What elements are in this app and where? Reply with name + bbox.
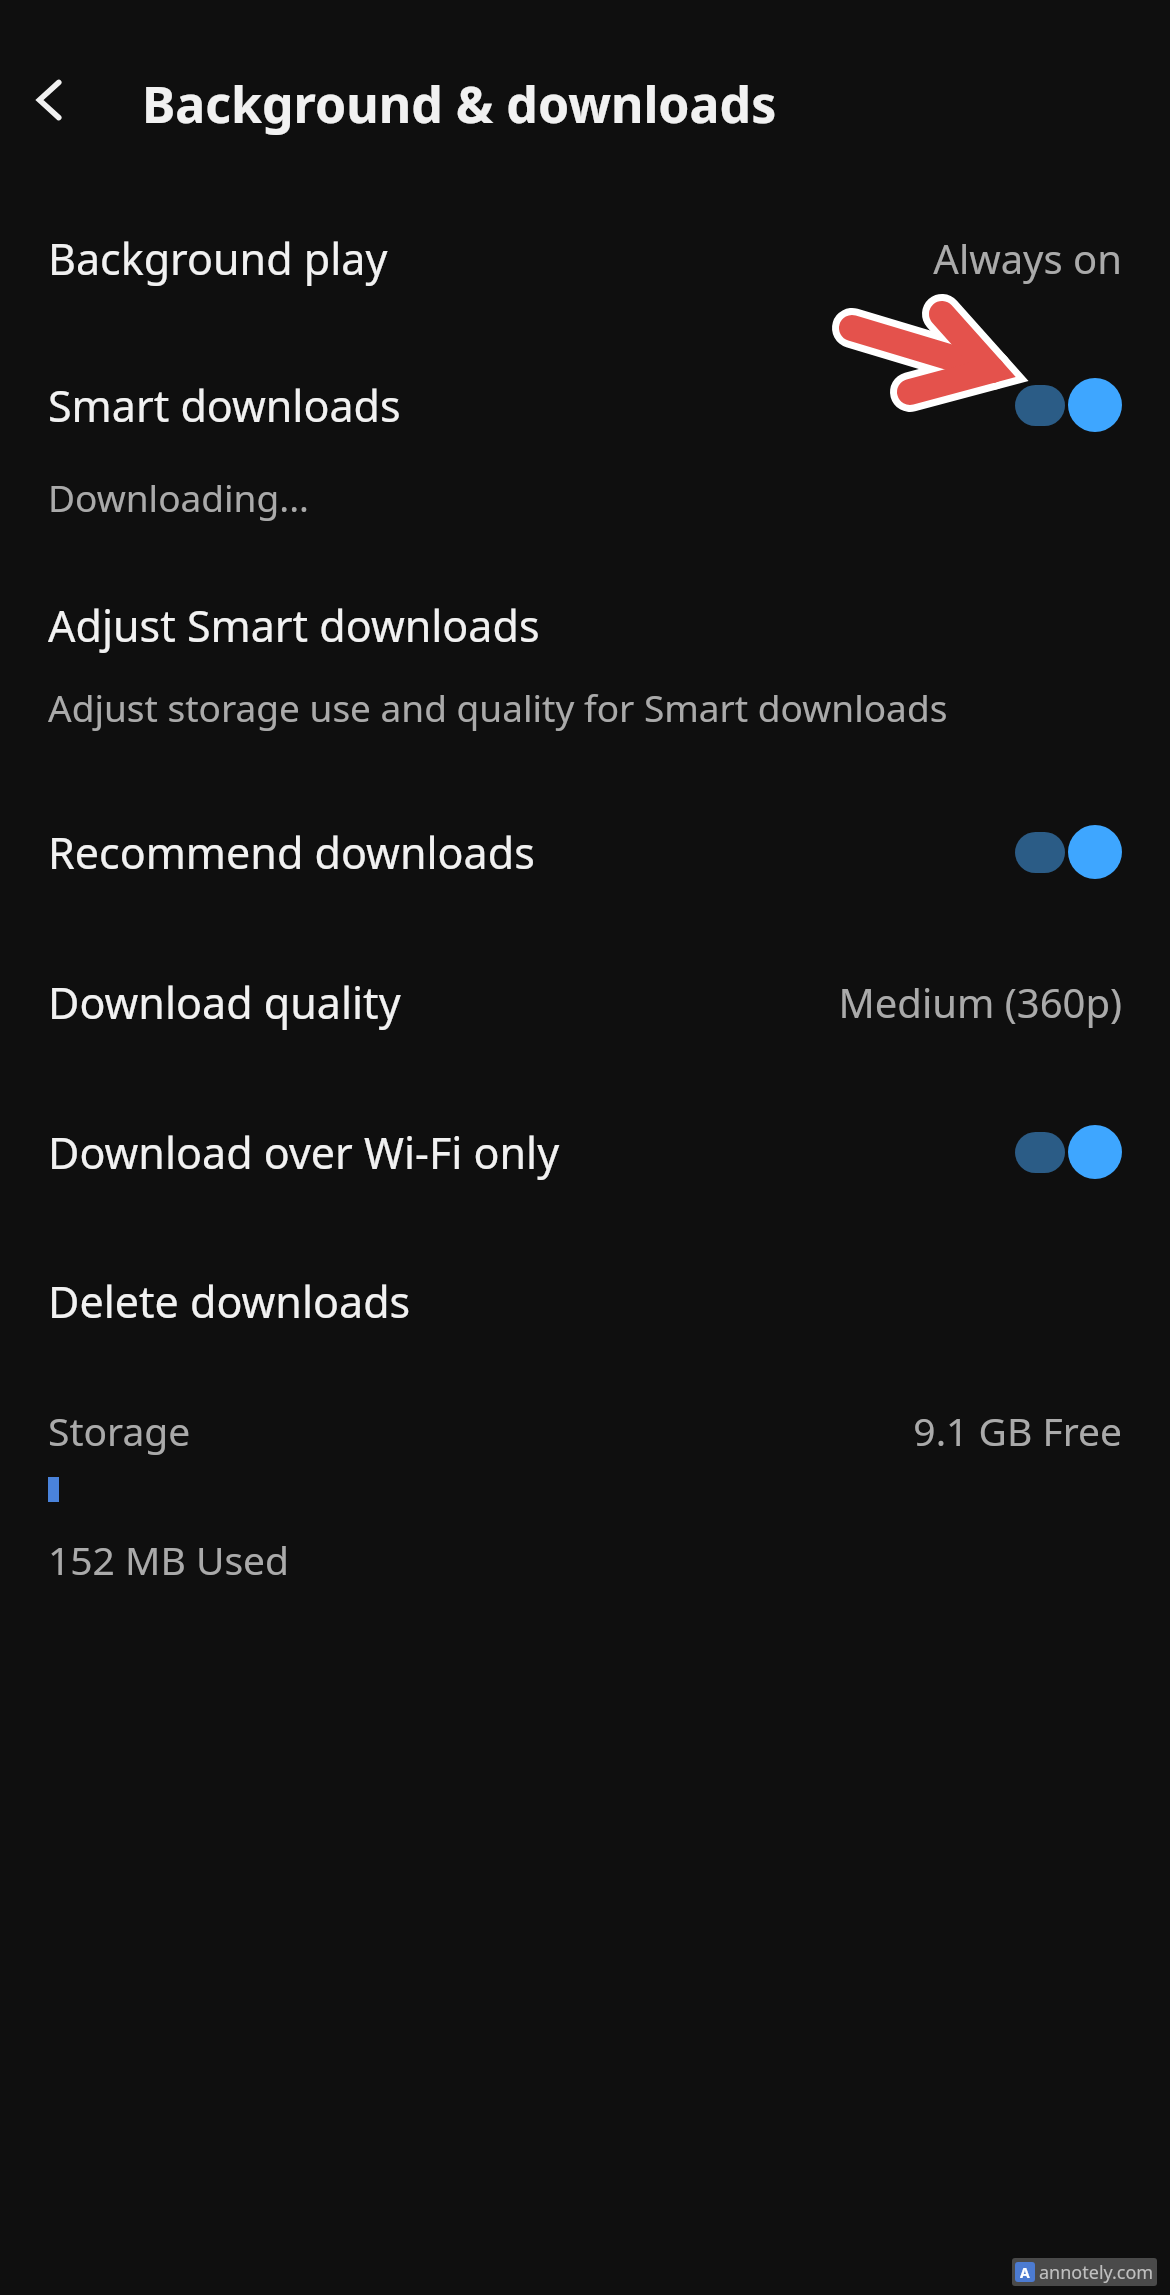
- button[interactable]: Toggle, on: [1015, 1124, 1122, 1180]
- button[interactable]: Delete downloads: [0, 1245, 1170, 1357]
- staticText: Adjust Smart downloads: [48, 596, 1122, 655]
- button[interactable]: Toggle, on: [1015, 377, 1122, 433]
- button[interactable]: Background play: [0, 202, 1170, 314]
- staticText: Medium (360p): [838, 975, 1122, 1029]
- staticText: Download over Wi-Fi only: [48, 1123, 1015, 1182]
- button[interactable]: Toggle, on: [1015, 824, 1122, 880]
- button[interactable]: Recommend downloads: [0, 796, 1170, 908]
- staticText: Storage: [48, 1404, 913, 1457]
- staticText: Background play: [48, 229, 933, 288]
- staticText: Smart downloads: [48, 376, 1015, 435]
- button[interactable]: Download over Wi-Fi only: [0, 1096, 1170, 1208]
- staticText: Delete downloads: [48, 1272, 1122, 1331]
- staticText: A: [1020, 2263, 1030, 2282]
- staticText: 9.1 GB Free: [913, 1404, 1122, 1457]
- staticText: Recommend downloads: [48, 823, 1015, 882]
- staticText: annotely.com: [1039, 2260, 1154, 2285]
- staticText: Downloading...: [48, 472, 309, 522]
- button[interactable]: Smart downloads: [0, 349, 1170, 461]
- button[interactable]: Storage: [0, 1380, 1170, 1480]
- staticText: Download quality: [48, 973, 838, 1032]
- staticText: 152 MB Used: [48, 1533, 290, 1586]
- staticText: Background & downloads: [142, 70, 777, 138]
- staticText: Always on: [933, 231, 1122, 285]
- staticText: Adjust storage use and quality for Smart…: [48, 682, 948, 732]
- button[interactable]: Download quality: [0, 946, 1170, 1058]
- button[interactable]: Back: [14, 64, 86, 136]
- button[interactable]: Adjust Smart downloads: [0, 569, 1170, 681]
